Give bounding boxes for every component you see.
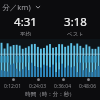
staticText: 平均 <box>20 31 31 36</box>
other: Change metric <box>34 3 42 11</box>
staticText: 4:31 <box>14 14 37 30</box>
staticText: 分／km) <box>2 2 31 12</box>
staticText: 3:18 <box>64 14 87 30</box>
button[interactable] <box>0 39 100 77</box>
staticText: 0:12:01 <box>4 83 21 90</box>
staticText: ベスト <box>67 31 84 36</box>
button[interactable]: 分／km) <box>0 0 100 14</box>
button[interactable]: 3:18 <box>50 14 100 36</box>
staticText: 0:48:06 <box>79 83 96 90</box>
staticText: 0:24:03 <box>29 83 46 90</box>
staticText: 0:36:04 <box>54 83 71 90</box>
button[interactable]: 4:31 <box>0 14 50 36</box>
staticText: 時間（時：分：秒） <box>25 91 75 98</box>
